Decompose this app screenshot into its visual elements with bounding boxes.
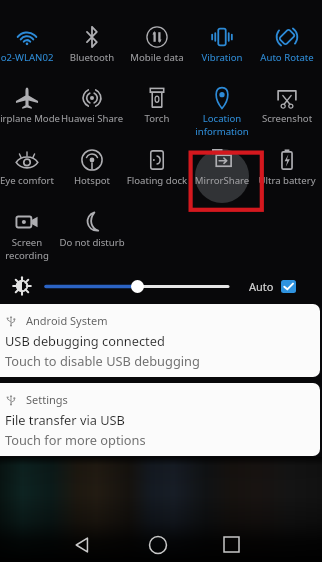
- staticText: Vibration: [187, 51, 257, 64]
- button[interactable]: Auto Rotate: [252, 11, 322, 67]
- staticText: Android System: [26, 313, 108, 328]
- button[interactable]: Auto brightness: [281, 280, 296, 293]
- staticText: Mobile data: [122, 51, 192, 64]
- button[interactable]: Ultra battery: [252, 134, 322, 190]
- staticText: Hotspot: [57, 174, 127, 187]
- staticText: File transfer via USB: [5, 411, 125, 428]
- button[interactable]: o2-WLAN02: [0, 11, 62, 67]
- staticText: o2-WLAN02: [0, 51, 62, 64]
- staticText: Bluetooth: [57, 51, 127, 64]
- button[interactable]: Screen recording: [0, 196, 62, 252]
- button[interactable]: Recent apps: [209, 522, 254, 562]
- staticText: Auto Rotate: [252, 51, 322, 64]
- button[interactable]: Back: [59, 522, 104, 562]
- staticText: Do not disturb: [57, 236, 127, 249]
- button[interactable]: Eye comfort: [0, 134, 62, 190]
- staticText: Screenshot: [252, 112, 322, 125]
- button[interactable]: Hotspot: [57, 134, 127, 190]
- staticText: Eye comfort: [0, 174, 62, 187]
- button[interactable]: Brightness: [131, 280, 144, 293]
- button[interactable]: Settings: [0, 383, 320, 456]
- staticText: MirrorShare: [187, 174, 257, 187]
- button[interactable]: Floating dock: [122, 134, 192, 190]
- staticText: Huawei Share: [57, 112, 127, 125]
- staticText: Touch to disable USB debugging: [5, 352, 200, 369]
- button[interactable]: Screenshot: [252, 72, 322, 128]
- staticText: Airplane Mode: [0, 112, 62, 125]
- button[interactable]: Location information: [187, 72, 257, 128]
- button[interactable]: Android System: [0, 304, 320, 377]
- staticText: Torch: [122, 112, 192, 125]
- button[interactable]: Home: [135, 522, 180, 562]
- staticText: Touch for more options: [5, 431, 146, 448]
- staticText: Floating dock: [122, 174, 192, 187]
- button[interactable]: Do not disturb: [57, 196, 127, 252]
- staticText: Auto: [249, 279, 274, 294]
- button[interactable]: Mobile data: [122, 11, 192, 67]
- staticText: Ultra battery: [252, 174, 322, 187]
- button[interactable]: MirrorShare: [187, 134, 257, 190]
- button[interactable]: Huawei Share: [57, 72, 127, 128]
- button[interactable]: Torch: [122, 72, 192, 128]
- button[interactable]: Bluetooth: [57, 11, 127, 67]
- staticText: Location information: [187, 112, 257, 138]
- button[interactable]: Vibration: [187, 11, 257, 67]
- staticText: Settings: [26, 392, 68, 407]
- button[interactable]: Airplane Mode: [0, 72, 62, 128]
- staticText: USB debugging connected: [5, 332, 165, 349]
- staticText: Screen recording: [0, 236, 62, 262]
